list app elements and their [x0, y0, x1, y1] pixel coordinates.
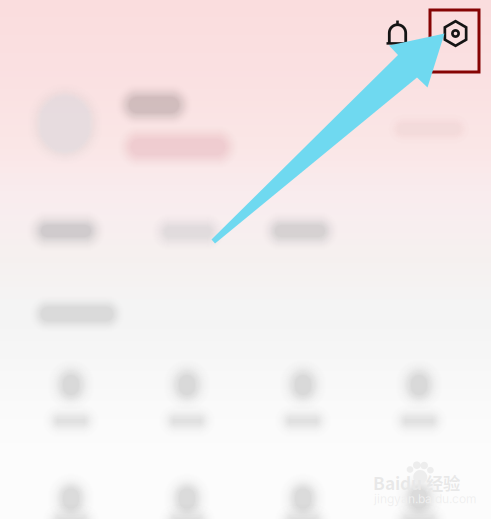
button[interactable]: Settings [430, 10, 479, 72]
button[interactable]: Notifications [376, 11, 419, 55]
staticText: jingyan.baidu.com [374, 492, 477, 506]
staticText: Baidu 经验 [373, 470, 460, 495]
